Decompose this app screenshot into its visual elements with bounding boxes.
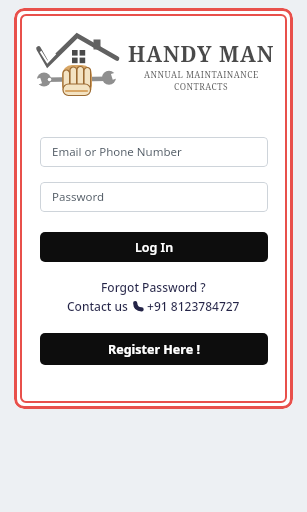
button[interactable]: Email or Phone Number: [40, 137, 268, 167]
button[interactable]: Password: [40, 182, 268, 212]
staticText: Email or Phone Number: [52, 144, 182, 160]
staticText: Password: [52, 189, 105, 205]
button[interactable]: Contact us: [67, 298, 240, 314]
staticText: Log In: [135, 239, 174, 256]
staticText: Contact us: [67, 298, 132, 314]
button[interactable]: Register Here !: [40, 333, 268, 365]
staticText: CONTRACTS: [174, 81, 229, 93]
staticText: ANNUAL MAINTAINANCE: [144, 69, 259, 81]
staticText: Register Here !: [108, 341, 200, 358]
staticText: HANDY MAN: [128, 40, 275, 69]
button[interactable]: Log In: [40, 232, 268, 262]
staticText: +91 8123784727: [144, 298, 240, 314]
button[interactable]: Forgot Password ?: [101, 279, 206, 295]
